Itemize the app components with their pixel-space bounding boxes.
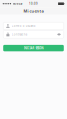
staticText: Mi cuenta bbox=[23, 8, 43, 14]
staticText: INICIAR SESIÓN bbox=[23, 46, 43, 50]
staticText: Contraseña bbox=[12, 33, 27, 36]
staticText: Correo o usuario bbox=[12, 24, 36, 28]
button[interactable]: Contraseña bbox=[3, 31, 64, 38]
staticText: Movistar bbox=[12, 2, 22, 5]
button[interactable]: Correo o usuario bbox=[3, 22, 64, 30]
button[interactable]: INICIAR SESIÓN bbox=[3, 45, 64, 51]
staticText: 10:09 bbox=[29, 2, 38, 5]
